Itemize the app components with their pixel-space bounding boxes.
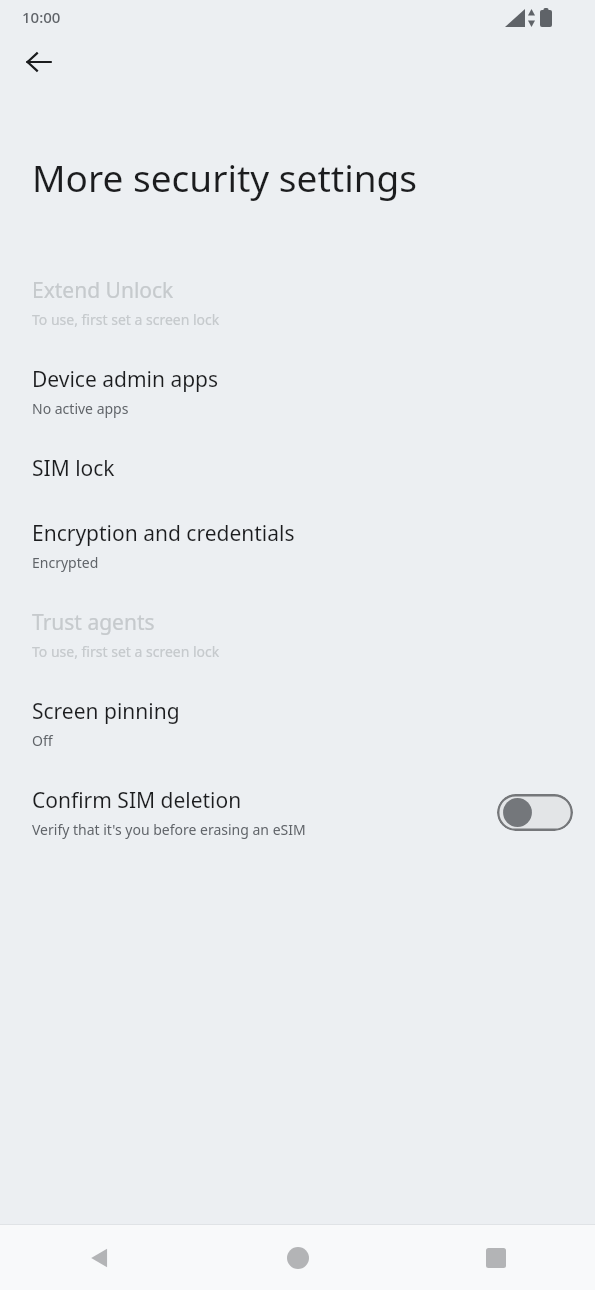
staticText: Device admin apps [32, 365, 219, 394]
button[interactable]: Device admin apps [0, 347, 595, 436]
button[interactable]: Navigate up [15, 38, 63, 86]
button[interactable]: Recent apps [397, 1225, 595, 1290]
button[interactable]: Confirm SIM deletion toggle [497, 794, 573, 831]
button[interactable]: Screen pinning [0, 679, 595, 768]
staticText: Verify that it's you before erasing an e… [32, 820, 306, 839]
staticText: Encrypted [32, 553, 99, 572]
staticText: To use, first set a screen lock [32, 642, 220, 661]
staticText: Confirm SIM deletion [32, 786, 242, 815]
staticText: Extend Unlock [32, 276, 174, 305]
staticText: No active apps [32, 399, 129, 418]
button[interactable]: Back [0, 1225, 199, 1290]
staticText: SIM lock [32, 454, 115, 483]
button[interactable]: Confirm SIM deletion [0, 768, 595, 857]
button[interactable]: Encryption and credentials [0, 501, 595, 590]
staticText: Screen pinning [32, 697, 180, 726]
button[interactable]: Home [199, 1225, 397, 1290]
staticText: Encryption and credentials [32, 519, 295, 548]
staticText: Trust agents [32, 608, 155, 637]
button[interactable]: SIM lock [0, 436, 595, 501]
staticText: To use, first set a screen lock [32, 310, 220, 329]
staticText: More security settings [32, 152, 418, 202]
staticText: Off [32, 731, 53, 750]
button[interactable]: Extend Unlock [0, 258, 595, 347]
staticText: 10:00 [22, 7, 61, 27]
button[interactable]: Trust agents [0, 590, 595, 679]
